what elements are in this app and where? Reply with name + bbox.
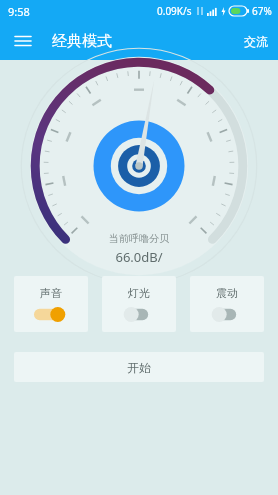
staticText: 66.0dB/ xyxy=(115,248,163,266)
button[interactable]: 灯光 xyxy=(102,276,176,332)
button[interactable]: 声音 xyxy=(14,276,88,332)
staticText: 声音 xyxy=(40,286,62,300)
staticText: 经典模式 xyxy=(52,32,112,51)
staticText: 灯光 xyxy=(128,286,150,300)
button[interactable]: 开始 xyxy=(14,352,264,382)
staticText: 震动 xyxy=(216,286,238,300)
button[interactable]: 交流 xyxy=(234,26,278,57)
staticText: 交流 xyxy=(244,34,268,49)
staticText: 当前呼噜分贝 xyxy=(109,232,169,245)
staticText: 0.09K/s xyxy=(157,4,192,18)
staticText: 开始 xyxy=(127,360,151,375)
button[interactable]: 震动 xyxy=(190,276,264,332)
staticText: 9:58 xyxy=(8,4,30,19)
staticText: 67% xyxy=(252,4,272,18)
button[interactable]: Menu xyxy=(8,26,38,56)
